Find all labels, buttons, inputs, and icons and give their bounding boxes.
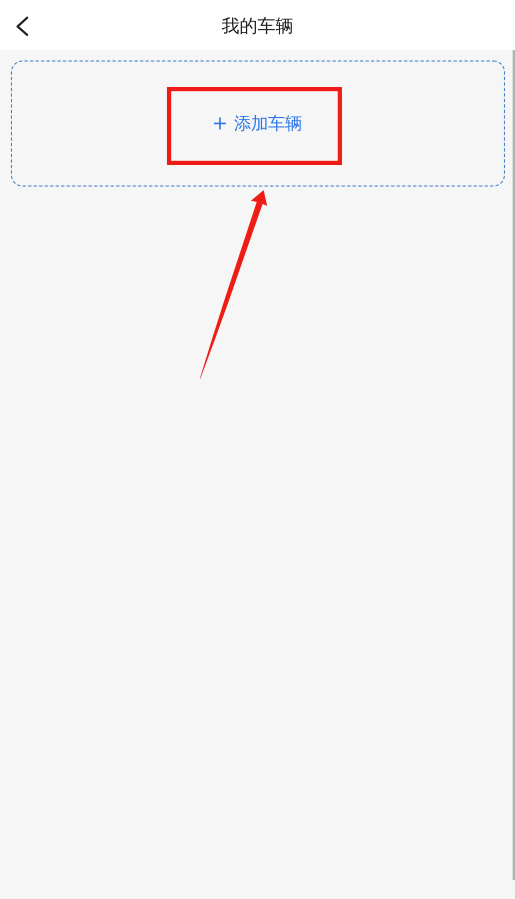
button[interactable]: Back: [0, 5, 44, 49]
button[interactable]: 添加车辆: [171, 85, 345, 162]
staticText: 我的车辆: [221, 15, 293, 37]
staticText: 添加车辆: [234, 113, 302, 134]
